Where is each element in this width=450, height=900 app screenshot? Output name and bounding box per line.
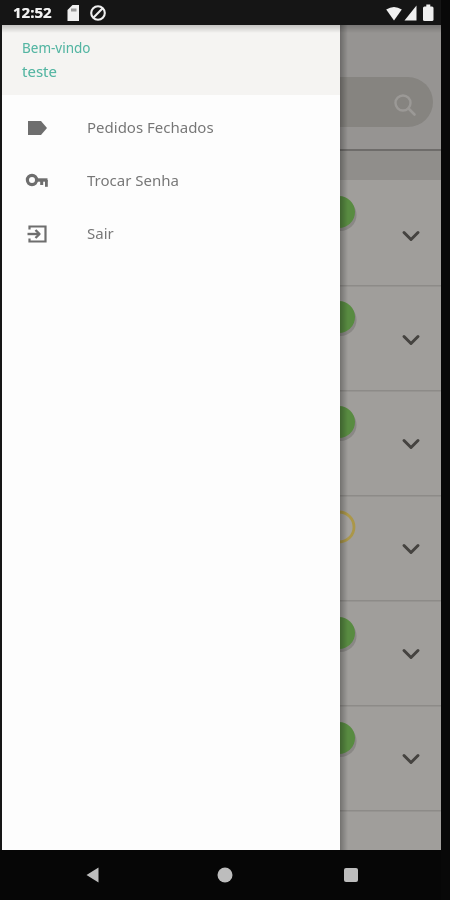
button[interactable] bbox=[201, 851, 249, 899]
button[interactable]: Trocar Senha bbox=[2, 153, 340, 206]
button[interactable]: Pedidos Fechados bbox=[2, 100, 340, 153]
button[interactable]: Sair bbox=[2, 206, 340, 259]
staticText: Trocar Senha bbox=[87, 170, 179, 190]
staticText: 12:52 bbox=[13, 2, 52, 22]
staticText: Bem-vindo bbox=[22, 39, 91, 57]
staticText: Pedidos Fechados bbox=[87, 117, 214, 137]
staticText: teste bbox=[22, 61, 57, 81]
button[interactable] bbox=[327, 851, 375, 899]
staticText: Sair bbox=[87, 223, 114, 243]
button[interactable] bbox=[69, 851, 117, 899]
